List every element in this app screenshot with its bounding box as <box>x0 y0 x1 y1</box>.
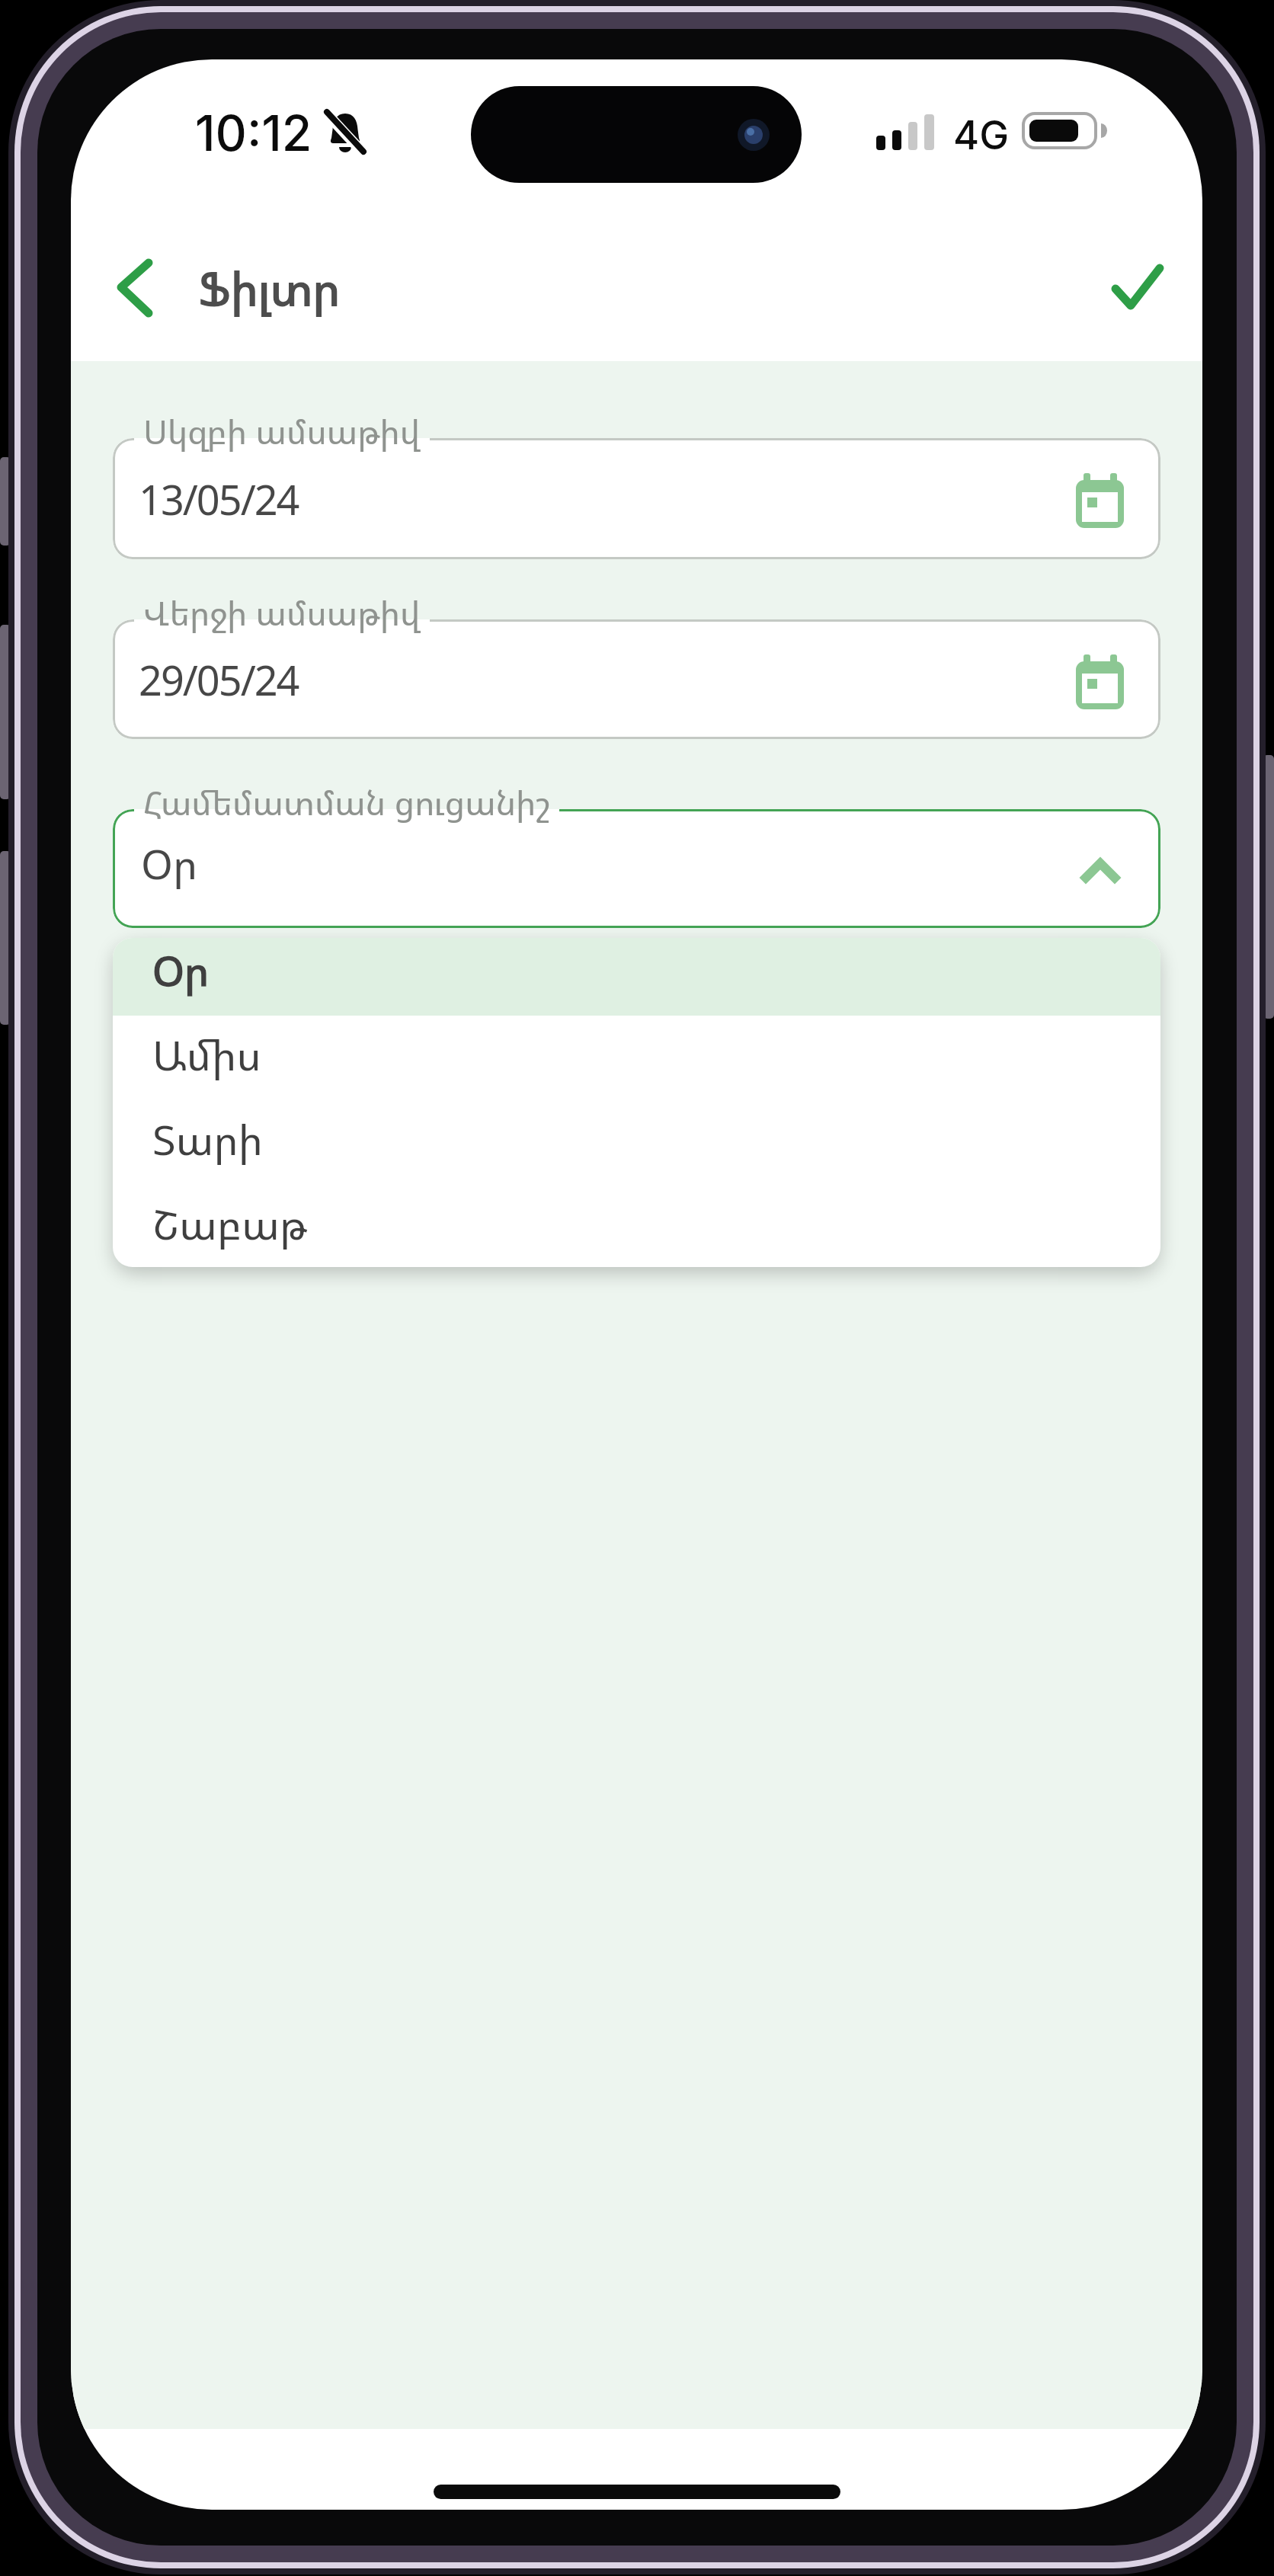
staticText: Համեմատման ցուցանիշ <box>143 779 550 825</box>
button[interactable] <box>92 246 176 330</box>
button[interactable] <box>113 1183 1160 1267</box>
staticText: Ամիս <box>152 1026 261 1082</box>
staticText: Վերջի ամսաթիվ <box>143 590 421 635</box>
button[interactable] <box>113 619 1160 739</box>
staticText: Շաբաթ <box>152 1195 307 1251</box>
staticText: Ֆիլտր <box>199 257 341 319</box>
button[interactable] <box>113 1016 1160 1099</box>
button[interactable] <box>1092 250 1183 326</box>
staticText: Օր <box>141 835 198 891</box>
staticText: 4G <box>953 111 1009 159</box>
staticText: 29/05/24 <box>139 651 299 707</box>
button[interactable] <box>113 938 1160 1016</box>
staticText: Օր <box>152 942 210 997</box>
staticText: Սկզբի ամսաթիվ <box>143 408 421 454</box>
staticText: Տարի <box>152 1111 263 1166</box>
button[interactable] <box>113 809 1160 928</box>
staticText: 10:12 <box>195 104 312 162</box>
staticText: 13/05/24 <box>139 471 299 526</box>
button[interactable] <box>113 438 1160 559</box>
button[interactable] <box>113 1099 1160 1183</box>
